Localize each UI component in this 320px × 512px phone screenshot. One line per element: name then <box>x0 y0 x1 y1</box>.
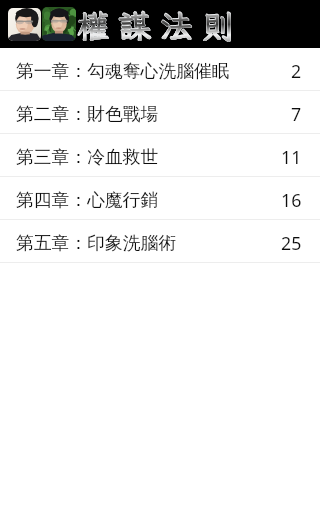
button[interactable]: Author photo 2 <box>42 7 76 41</box>
button[interactable]: 第五章：印象洗腦術 <box>0 220 320 263</box>
button[interactable]: 第三章：冷血救世 <box>0 134 320 177</box>
staticText: 7 <box>291 102 302 126</box>
staticText: 16 <box>281 188 302 212</box>
staticText: 11 <box>281 145 302 169</box>
staticText: 2 <box>291 59 302 83</box>
button[interactable]: Author photo 1 <box>8 8 41 41</box>
staticText: 第一章：勾魂奪心洗腦催眠 <box>16 60 230 82</box>
button[interactable]: 第二章：財色戰場 <box>0 91 320 134</box>
staticText: 第四章：心魔行銷 <box>16 189 159 211</box>
staticText: 第三章：冷血救世 <box>16 146 159 168</box>
staticText: 第二章：財色戰場 <box>16 103 159 125</box>
staticText: 第五章：印象洗腦術 <box>16 232 177 254</box>
button[interactable]: 第一章：勾魂奪心洗腦催眠 <box>0 48 320 91</box>
other: 權謀法則 <box>76 1 320 48</box>
staticText: 25 <box>281 231 302 255</box>
button[interactable]: 第四章：心魔行銷 <box>0 177 320 220</box>
